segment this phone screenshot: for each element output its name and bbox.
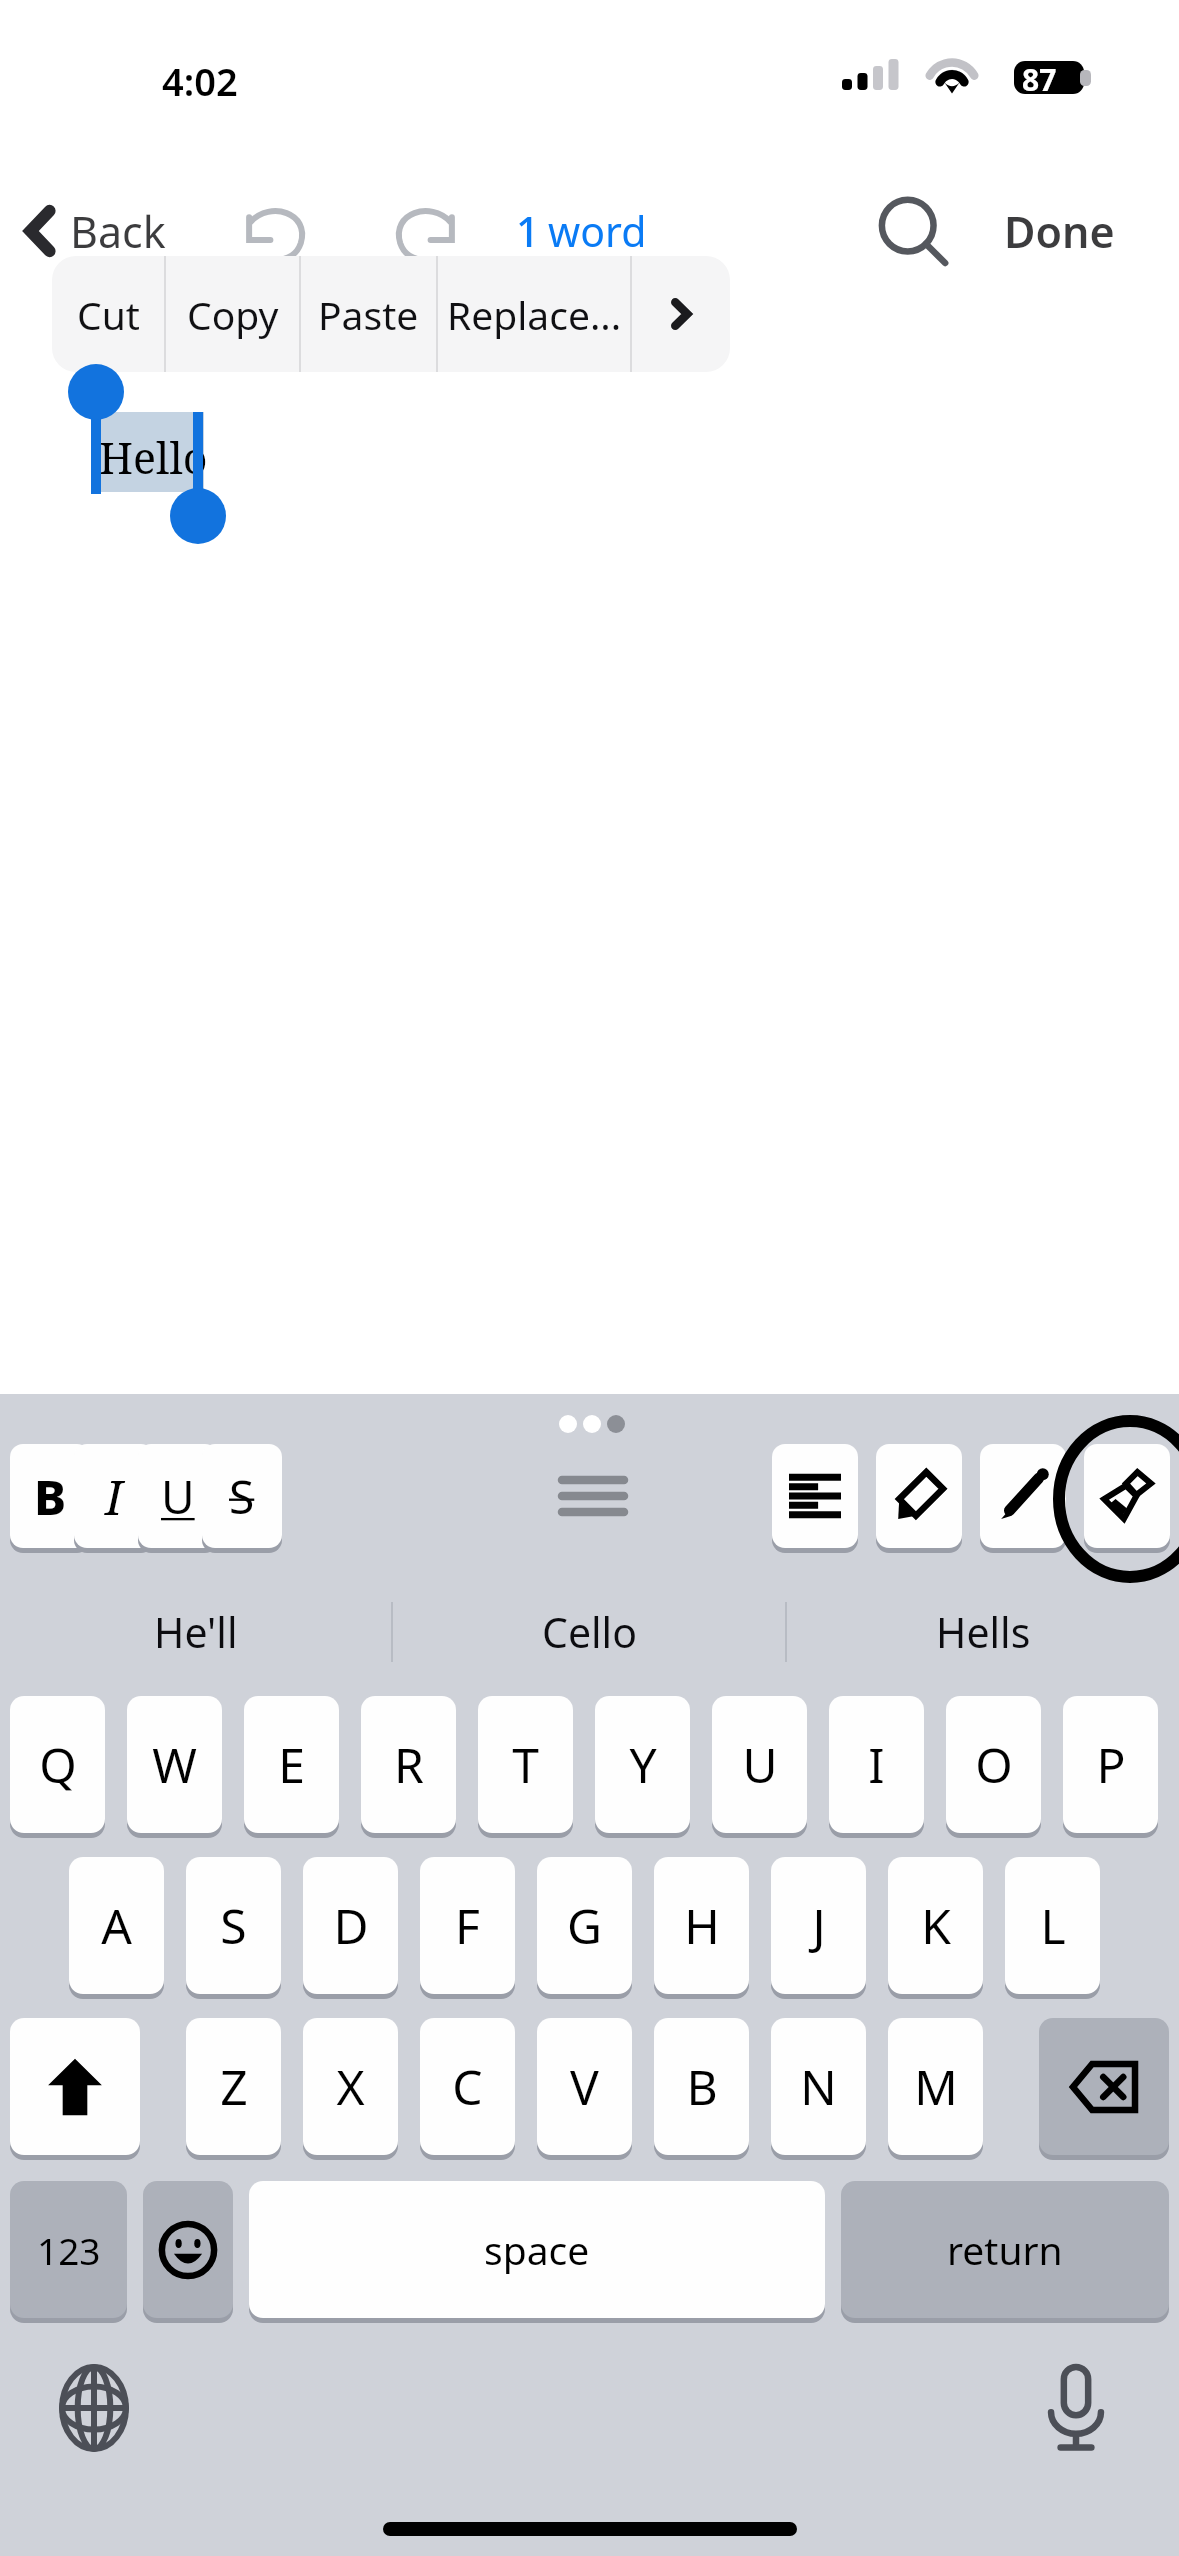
staticText: B [686, 2054, 718, 2119]
button[interactable]: Search [870, 192, 952, 274]
button[interactable]: E [244, 1696, 339, 1833]
staticText: F [455, 1893, 480, 1958]
staticText: Paste [318, 288, 419, 341]
button[interactable]: Paragraph style [528, 1448, 658, 1544]
button[interactable]: C [420, 2018, 515, 2155]
button[interactable]: Highlighter [876, 1444, 962, 1548]
button[interactable]: Format I [74, 1444, 154, 1548]
button[interactable]: Undo [240, 196, 316, 272]
staticText: S [229, 1465, 255, 1528]
button[interactable]: Brush [1084, 1444, 1170, 1548]
staticText: K [921, 1893, 951, 1958]
button[interactable]: X [303, 2018, 398, 2155]
button[interactable]: Align text [772, 1444, 858, 1548]
staticText: B [34, 1464, 67, 1529]
staticText: H [684, 1893, 720, 1958]
button[interactable]: N [771, 2018, 866, 2155]
button[interactable]: I [829, 1696, 924, 1833]
button[interactable]: P [1063, 1696, 1158, 1833]
button[interactable]: J [771, 1857, 866, 1994]
staticText: A [101, 1893, 132, 1958]
button[interactable]: Paste [301, 256, 436, 372]
staticText: X [336, 2054, 365, 2119]
staticText: I [868, 1732, 885, 1797]
button[interactable]: R [361, 1696, 456, 1833]
staticText: M [914, 2054, 958, 2119]
button[interactable]: Format B [10, 1444, 90, 1548]
staticText: Hells [936, 1604, 1031, 1660]
button[interactable]: K [888, 1857, 983, 1994]
staticText: Copy [187, 288, 279, 341]
staticText: T [512, 1732, 539, 1797]
staticText: N [800, 2054, 837, 2119]
button[interactable]: M [888, 2018, 983, 2155]
button[interactable]: L [1005, 1857, 1100, 1994]
button[interactable]: Emoji [143, 2181, 233, 2318]
button[interactable]: Dictate [1020, 2352, 1132, 2464]
button[interactable]: Format S [202, 1444, 282, 1548]
button[interactable]: D [303, 1857, 398, 1994]
button[interactable]: G [537, 1857, 632, 1994]
button[interactable]: Format U [138, 1444, 218, 1548]
button[interactable]: Z [186, 2018, 281, 2155]
staticText: He'll [154, 1604, 238, 1660]
staticText: I [105, 1464, 123, 1529]
button[interactable]: A [69, 1857, 164, 1994]
staticText: E [278, 1732, 305, 1797]
staticText: 4:02 [162, 55, 238, 107]
button[interactable]: Numbers [10, 2181, 127, 2318]
button[interactable]: T [478, 1696, 573, 1833]
button[interactable]: H [654, 1857, 749, 1994]
staticText: 123 [37, 2225, 101, 2275]
staticText: R [394, 1732, 424, 1797]
staticText: word [548, 203, 647, 259]
button[interactable]: B [654, 2018, 749, 2155]
staticText: return [947, 2223, 1063, 2276]
staticText: G [567, 1893, 602, 1958]
staticText: space [484, 2223, 590, 2276]
button[interactable]: Q [10, 1696, 105, 1833]
button[interactable]: Y [595, 1696, 690, 1833]
button[interactable]: Shift [10, 2018, 140, 2155]
button[interactable]: V [537, 2018, 632, 2155]
staticText: P [1096, 1732, 1126, 1797]
staticText: U [742, 1732, 778, 1797]
button[interactable]: More options [632, 256, 730, 372]
button[interactable]: Next keyboard [38, 2352, 150, 2464]
staticText: 1 [516, 203, 540, 259]
button[interactable]: Delete [1039, 2018, 1169, 2155]
staticText: J [812, 1893, 826, 1958]
staticText: C [452, 2054, 483, 2119]
button[interactable]: Done [988, 185, 1131, 277]
button[interactable]: He'll [0, 1584, 391, 1680]
staticText: Done [1004, 202, 1115, 261]
button[interactable]: Redo [385, 196, 461, 272]
button[interactable]: U [712, 1696, 807, 1833]
button[interactable]: F [420, 1857, 515, 1994]
button[interactable]: Space [249, 2181, 825, 2318]
button[interactable]: Back [16, 185, 180, 277]
button[interactable]: W [127, 1696, 222, 1833]
staticText: L [1040, 1893, 1066, 1958]
staticText: Hello [99, 428, 208, 487]
staticText: U [161, 1465, 195, 1528]
staticText: Replace... [447, 288, 622, 341]
button[interactable]: Cut [52, 256, 164, 372]
button[interactable]: Replace... [438, 256, 630, 372]
staticText: V [570, 2054, 599, 2119]
button[interactable]: Cello [393, 1584, 785, 1680]
staticText: O [975, 1732, 1013, 1797]
staticText: Cello [542, 1604, 637, 1660]
button[interactable]: S [186, 1857, 281, 1994]
staticText: Z [220, 2054, 248, 2119]
staticText: Cut [77, 288, 140, 341]
button[interactable]: O [946, 1696, 1041, 1833]
staticText: S [220, 1893, 247, 1958]
button[interactable]: Hells [787, 1584, 1179, 1680]
staticText: 87 [1022, 59, 1057, 100]
button[interactable]: Return [841, 2181, 1169, 2318]
staticText: Q [39, 1732, 77, 1797]
button[interactable]: Pencil [980, 1444, 1066, 1548]
staticText: Back [70, 202, 166, 261]
button[interactable]: Copy [166, 256, 299, 372]
